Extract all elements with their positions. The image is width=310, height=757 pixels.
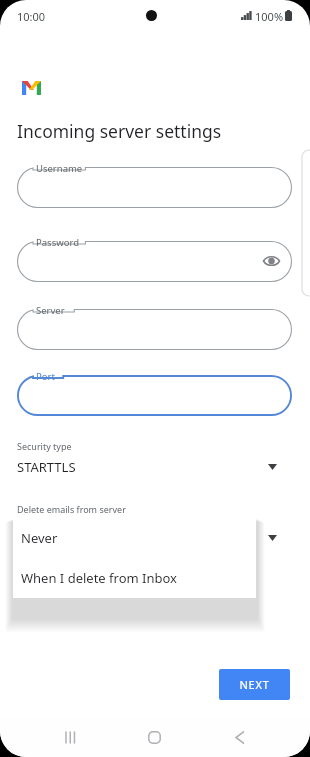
staticText: Server	[36, 304, 65, 317]
button[interactable]: Back	[226, 728, 254, 746]
button[interactable]: Delete emails from server	[264, 531, 282, 545]
button[interactable]: Security type	[0, 440, 310, 482]
button[interactable]: Password	[17, 241, 292, 282]
button[interactable]: Port	[17, 375, 292, 416]
button[interactable]: NEXT	[219, 669, 290, 700]
staticText: Incoming server settings	[17, 119, 222, 143]
staticText: Delete emails from server	[17, 503, 126, 515]
button[interactable]: Server	[17, 309, 292, 350]
button[interactable]: Username	[17, 167, 292, 208]
button[interactable]: Show password	[258, 248, 284, 274]
staticText: Security type	[17, 440, 72, 452]
staticText: 10:00	[17, 9, 46, 24]
staticText: Username	[36, 162, 83, 175]
staticText: 100%	[255, 9, 284, 24]
button[interactable]: Recent apps	[57, 728, 85, 746]
staticText: Never	[21, 529, 58, 547]
button[interactable]: Never	[13, 518, 256, 558]
staticText: NEXT	[239, 677, 270, 692]
staticText: When I delete from Inbox	[21, 569, 177, 587]
button[interactable]: Home	[141, 728, 169, 746]
button[interactable]: When I delete from Inbox	[13, 558, 256, 598]
staticText: Port	[36, 370, 55, 383]
staticText: Password	[36, 236, 79, 249]
staticText: STARTTLS	[17, 458, 76, 476]
